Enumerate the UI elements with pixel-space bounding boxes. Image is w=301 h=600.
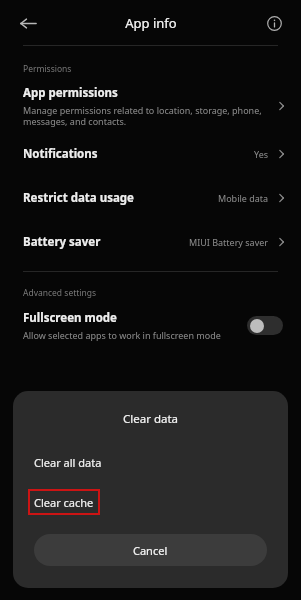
staticText: Advanced settings [23,287,97,299]
button[interactable]: Cancel [34,534,267,566]
button[interactable]: Fullscreen mode [0,308,301,342]
staticText: Yes [254,148,269,160]
button[interactable]: Clear all data [13,449,288,475]
staticText: Clear cache [34,495,94,510]
staticText: Permissions [23,63,72,75]
button[interactable]: Notifications [0,143,301,165]
button[interactable]: Restrict data usage [0,187,301,209]
button[interactable]: Fullscreen mode toggle [247,316,283,335]
staticText: Fullscreen mode [23,310,117,326]
staticText: Cancel [133,543,168,558]
staticText: Restrict data usage [23,190,134,206]
staticText: Mobile data [218,192,269,204]
staticText: Clear data [13,411,288,427]
button[interactable]: Back [12,7,44,39]
staticText: App info [125,14,177,32]
button[interactable]: App details [259,8,289,38]
staticText: App permissions [23,85,118,101]
button[interactable]: Battery saver [0,231,301,253]
button[interactable]: Clear cache [28,489,100,515]
staticText: Notifications [23,146,98,162]
staticText: MIUI Battery saver [189,236,269,248]
staticText: Allow selected apps to work in fullscree… [23,329,221,341]
staticText: Manage permissions related to location, … [23,104,262,127]
staticText: Battery saver [23,234,101,250]
staticText: Clear all data [34,455,102,470]
button[interactable]: App permissions [0,85,301,127]
